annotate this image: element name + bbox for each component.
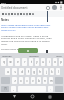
button[interactable]: a (5, 68, 10, 75)
button[interactable]: h (38, 68, 42, 75)
button[interactable]: Untitled document (1, 6, 28, 10)
button[interactable]: g (32, 68, 36, 75)
button[interactable]: r (22, 58, 27, 66)
button[interactable]: e (15, 58, 20, 66)
staticText: r (24, 60, 26, 64)
button[interactable]: Comments (44, 4, 51, 11)
staticText: http://www.reduxeducation.com/learning-s… (1, 23, 55, 32)
button[interactable]: y (35, 58, 39, 66)
button[interactable]: Back (10, 93, 18, 100)
staticText: i (49, 60, 50, 64)
button[interactable]: Text style (10, 11, 13, 17)
button[interactable]: Underline (19, 11, 22, 17)
staticText: p (60, 60, 62, 64)
staticText: updated (29, 54, 39, 57)
button[interactable]: w (8, 58, 13, 66)
button[interactable]: Print layout (7, 11, 10, 17)
staticText: m (50, 79, 53, 83)
button[interactable]: j (44, 68, 48, 75)
button[interactable]: Home (28, 93, 36, 100)
button[interactable]: Insert (31, 11, 34, 17)
button[interactable]: updated (28, 54, 40, 57)
button[interactable]: Undo (1, 11, 4, 17)
staticText: v (32, 79, 34, 83)
button[interactable]: Account (51, 4, 58, 11)
button[interactable]: o (53, 58, 57, 66)
button[interactable]: upgrade (1, 54, 13, 57)
button[interactable]: c (25, 77, 29, 84)
button[interactable]: b (37, 77, 41, 84)
button[interactable]: Bulleted list (28, 11, 31, 17)
staticText: t (31, 60, 32, 64)
staticText: y (36, 60, 38, 64)
staticText: , (13, 87, 14, 91)
button[interactable]: d (19, 68, 24, 75)
staticText: u (42, 60, 44, 64)
button[interactable]: Italic (16, 11, 19, 17)
button[interactable]: t (29, 58, 33, 66)
button[interactable]: , (11, 86, 16, 92)
button[interactable]: m (49, 77, 53, 84)
staticText: n (44, 79, 46, 83)
staticText: g (33, 70, 35, 74)
button[interactable]: Bold (13, 11, 16, 17)
staticText: 9:41 (1, 1, 6, 4)
button[interactable]: s (12, 68, 17, 75)
button[interactable]: More options (58, 5, 63, 10)
staticText: q (3, 60, 5, 64)
button[interactable]: z (12, 77, 17, 84)
staticText: upgrade (2, 54, 12, 57)
button[interactable]: i (47, 58, 51, 66)
button[interactable]: . (48, 86, 53, 92)
button[interactable]: ?1 (1, 86, 9, 92)
button[interactable]: Text colour (22, 11, 25, 17)
button[interactable]: n (43, 77, 47, 84)
staticText: l (58, 70, 59, 74)
button[interactable]: x (19, 77, 23, 84)
button[interactable]: Voice typing (18, 48, 38, 53)
staticText: Notes (1, 18, 9, 22)
staticText: Assignment due on Friday. Need 3 more so… (1, 34, 55, 46)
button[interactable]: u (41, 58, 45, 66)
button[interactable]: upon (55, 54, 63, 57)
staticText: j (46, 70, 47, 74)
staticText: Collect notes from study group (1, 47, 38, 50)
button[interactable]: v (31, 77, 35, 84)
staticText: o (54, 60, 56, 64)
staticText: s (14, 70, 16, 74)
staticText: e (17, 60, 19, 64)
button[interactable]: f (26, 68, 30, 75)
staticText: z (14, 79, 16, 83)
button[interactable]: Redo (4, 11, 7, 17)
button[interactable]: Recents (46, 93, 54, 100)
button[interactable]: l (56, 68, 60, 75)
button[interactable]: p (59, 58, 63, 66)
staticText: . (50, 87, 51, 91)
staticText: x (20, 79, 22, 83)
staticText: h (39, 70, 41, 74)
staticText: k (51, 70, 53, 74)
button[interactable]: k (50, 68, 54, 75)
staticText: a (7, 70, 9, 74)
staticText: c (26, 79, 28, 83)
staticText: ?1 (4, 87, 7, 91)
button[interactable]: q (1, 58, 6, 66)
button[interactable]: Align (25, 11, 28, 17)
staticText: Untitled document (1, 6, 28, 10)
staticText: f (28, 70, 29, 74)
staticText: upon (56, 54, 62, 57)
staticText: w (9, 60, 12, 64)
staticText: b (38, 79, 40, 83)
staticText: d (21, 70, 23, 74)
